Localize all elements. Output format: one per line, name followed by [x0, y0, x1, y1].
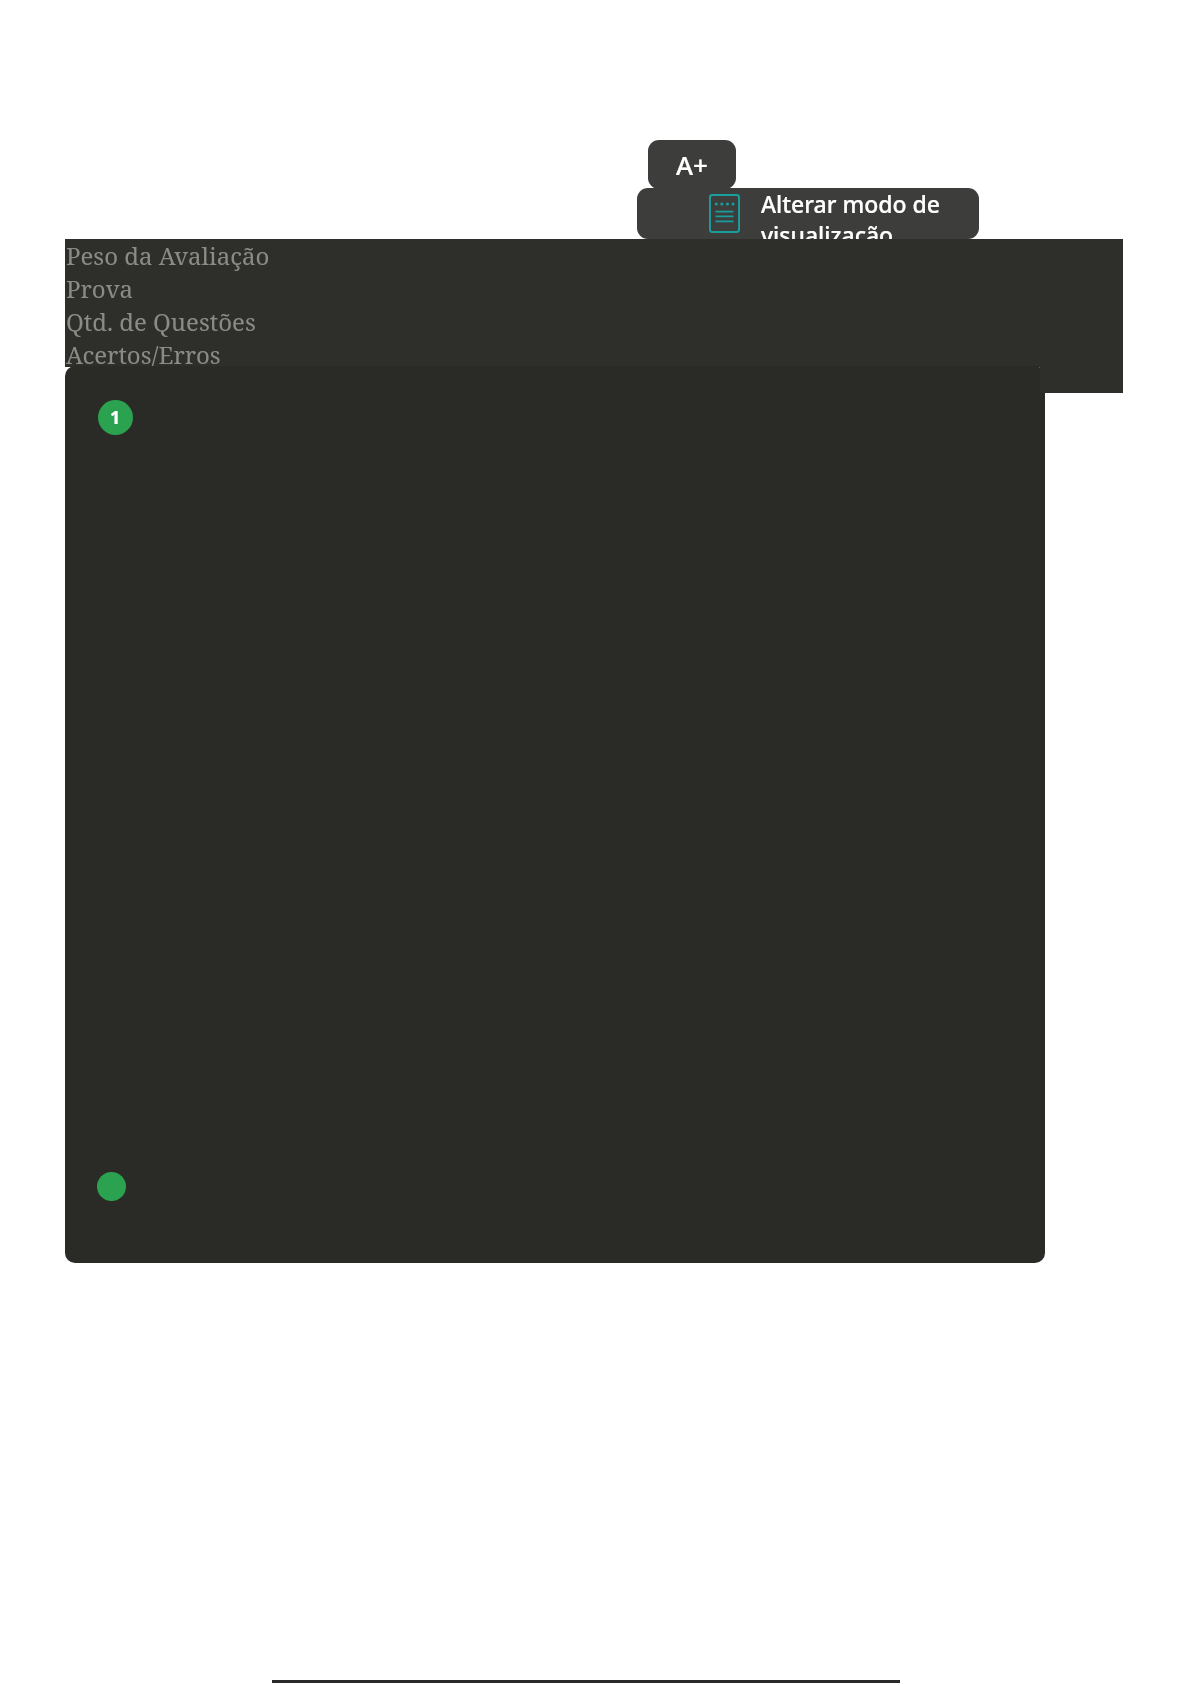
button[interactable]: 1 [65, 366, 1045, 1263]
staticText: 1 [110, 405, 121, 430]
staticText: Prova [66, 272, 134, 305]
staticText: Alterar modo de visualização [761, 188, 979, 239]
staticText: Peso da Avaliação [66, 239, 270, 272]
staticText: Qtd. de Questões [66, 305, 256, 338]
button[interactable]: Aumentar tamanho da fonte [648, 140, 736, 189]
button[interactable]: Alterar modo de visualização [637, 188, 979, 239]
staticText: A+ [676, 147, 708, 182]
staticText: Acertos/Erros [66, 338, 221, 367]
